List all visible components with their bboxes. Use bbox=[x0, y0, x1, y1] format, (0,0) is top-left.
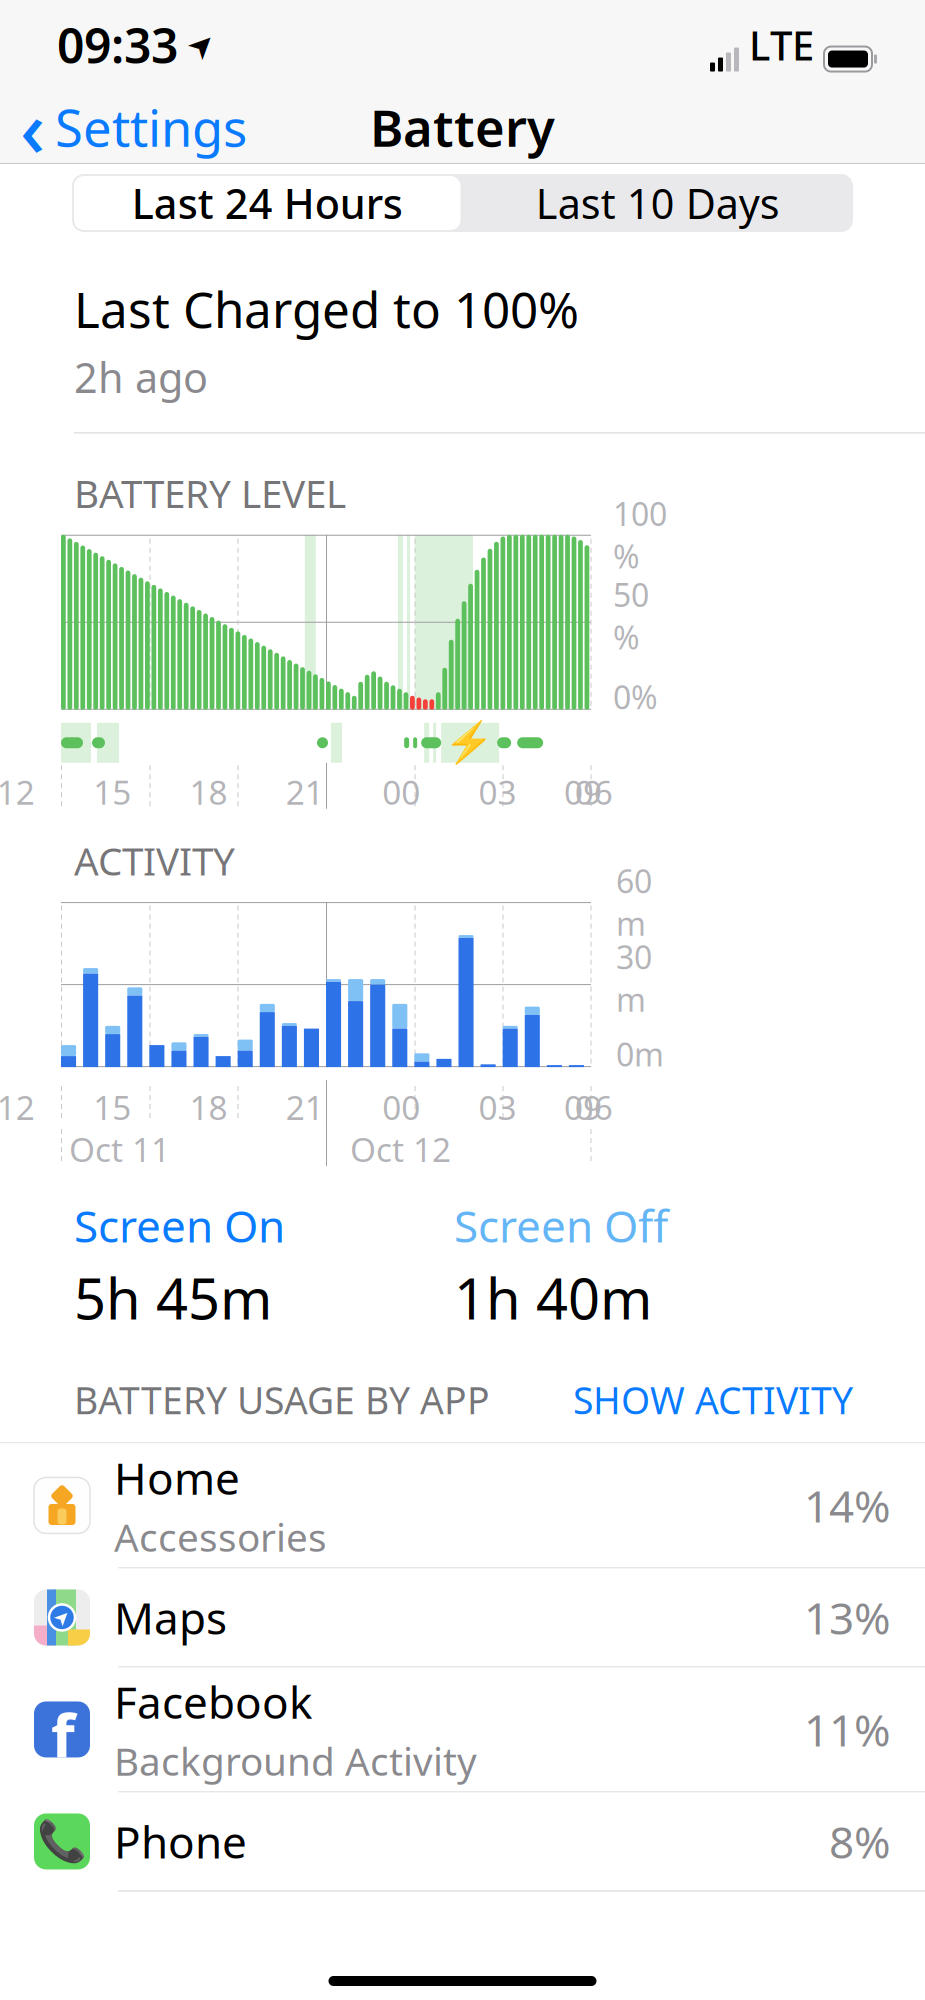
staticText: 06 bbox=[575, 770, 613, 814]
button[interactable]: f bbox=[0, 1667, 925, 1792]
staticText: Maps bbox=[114, 1588, 227, 1647]
staticText: ➤ bbox=[54, 1607, 70, 1628]
staticText: Settings bbox=[55, 93, 247, 161]
staticText: Accessories bbox=[114, 1511, 327, 1562]
staticText: f bbox=[51, 1694, 75, 1775]
staticText: Oct 12 bbox=[350, 1127, 451, 1171]
staticText: 12 bbox=[0, 770, 35, 814]
staticText: Background Activity bbox=[114, 1735, 477, 1786]
staticText: 0% bbox=[613, 675, 658, 718]
button[interactable]: ‹ bbox=[0, 90, 261, 164]
staticText: 100% bbox=[613, 492, 667, 577]
button[interactable]: Home bbox=[0, 1443, 925, 1568]
staticText: Facebook bbox=[114, 1673, 312, 1731]
staticText: 60m bbox=[616, 860, 652, 945]
staticText: 09 bbox=[564, 770, 602, 814]
staticText: 21 bbox=[286, 770, 324, 814]
staticText: 15 bbox=[93, 770, 131, 814]
staticText: Screen On bbox=[74, 1196, 285, 1254]
staticText: 1h 40m bbox=[454, 1260, 652, 1335]
staticText: 0m bbox=[616, 1033, 664, 1075]
staticText: LTE bbox=[749, 18, 814, 71]
staticText: 00 bbox=[382, 1085, 420, 1129]
staticText: 18 bbox=[189, 1085, 227, 1129]
staticText: Last 10 Days bbox=[536, 176, 780, 230]
staticText: Last Charged to 100% bbox=[74, 276, 579, 341]
staticText: 30m bbox=[616, 936, 652, 1021]
staticText: 14% bbox=[804, 1476, 891, 1535]
staticText: 2h ago bbox=[74, 349, 208, 404]
staticText: ACTIVITY bbox=[74, 835, 235, 886]
button[interactable]: SHOW ACTIVITY bbox=[573, 1375, 853, 1424]
staticText: 03 bbox=[478, 770, 516, 814]
staticText: 09:33 bbox=[57, 13, 178, 77]
button[interactable]: Last 10 Days bbox=[462, 176, 853, 230]
staticText: 12 bbox=[0, 1085, 35, 1129]
staticText: Last 24 Hours bbox=[132, 176, 403, 230]
staticText: Battery bbox=[370, 93, 555, 161]
staticText: 11% bbox=[804, 1700, 891, 1759]
staticText: 5h 45m bbox=[74, 1260, 272, 1335]
staticText: 03 bbox=[478, 1085, 516, 1129]
button[interactable]: 📞 bbox=[0, 1792, 925, 1891]
staticText: 15 bbox=[93, 1085, 131, 1129]
staticText: 09 bbox=[564, 1085, 602, 1129]
staticText: Phone bbox=[114, 1812, 247, 1871]
button[interactable]: ➤ bbox=[0, 1568, 925, 1667]
staticText: Screen Off bbox=[454, 1196, 668, 1254]
staticText: SHOW ACTIVITY bbox=[573, 1375, 853, 1424]
staticText: 50% bbox=[613, 573, 649, 658]
staticText: 18 bbox=[189, 770, 227, 814]
staticText: ⚡ bbox=[444, 720, 494, 766]
staticText: BATTERY USAGE BY APP bbox=[74, 1375, 490, 1424]
staticText: Home bbox=[114, 1449, 240, 1507]
staticText: 13% bbox=[804, 1588, 891, 1647]
staticText: 8% bbox=[829, 1812, 891, 1871]
staticText: ‹ bbox=[20, 76, 45, 178]
staticText: Oct 11 bbox=[69, 1127, 170, 1171]
staticText: BATTERY LEVEL bbox=[74, 467, 346, 519]
staticText: ➤ bbox=[188, 27, 215, 63]
button[interactable]: Last 24 Hours bbox=[72, 174, 462, 232]
staticText: 00 bbox=[382, 770, 420, 814]
staticText: 📞 bbox=[37, 1819, 87, 1864]
staticText: 06 bbox=[575, 1085, 613, 1129]
staticText: 21 bbox=[286, 1085, 324, 1129]
